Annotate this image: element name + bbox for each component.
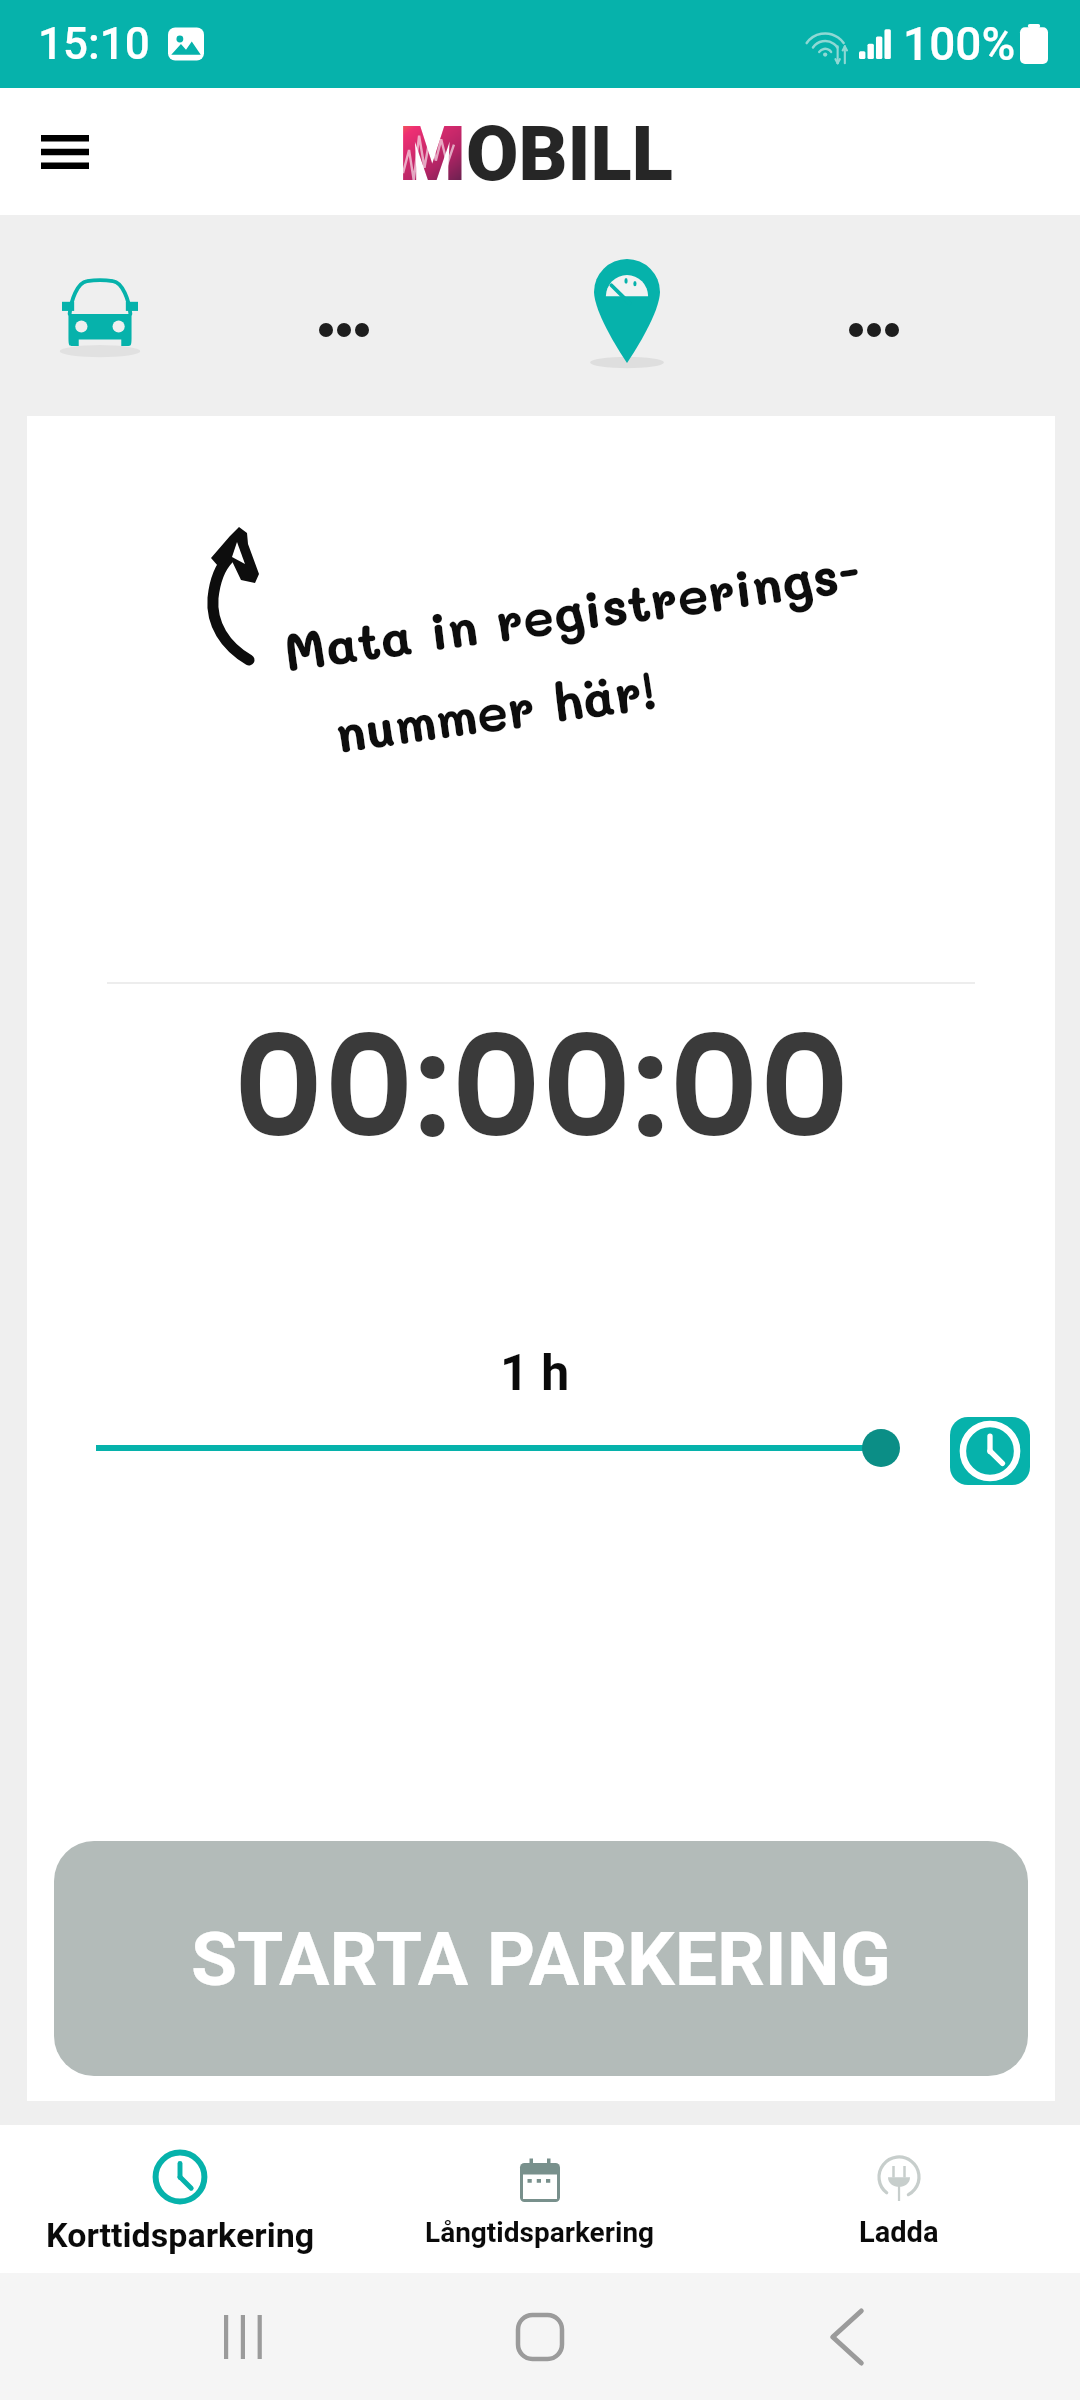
button[interactable]: Back xyxy=(797,2287,897,2387)
button[interactable]: Select vehicle xyxy=(22,253,177,381)
button[interactable]: Home xyxy=(490,2287,590,2387)
button[interactable]: Långtidsparkering xyxy=(360,2125,720,2273)
staticText: 00:00:00 xyxy=(233,989,850,1185)
button[interactable]: Recent apps xyxy=(195,2287,295,2387)
staticText: Långtidsparkering xyxy=(425,2216,655,2249)
button[interactable]: Select parking zone xyxy=(562,235,692,387)
button[interactable]: Open navigation menu xyxy=(12,97,118,207)
staticText: 100% xyxy=(903,17,1016,71)
staticText: 1 h xyxy=(500,1344,570,1403)
button[interactable]: Parking duration slider xyxy=(76,1418,901,1478)
staticText: STARTA PARKERING xyxy=(191,1915,891,2003)
staticText: Ladda xyxy=(859,2215,939,2249)
button[interactable]: STARTA PARKERING xyxy=(54,1841,1028,2076)
staticText: OBILL xyxy=(466,109,673,198)
button[interactable]: Ladda xyxy=(719,2125,1079,2273)
staticText: M xyxy=(399,109,466,198)
staticText: 15:10 xyxy=(38,18,150,70)
staticText: Korttidsparkering xyxy=(46,2215,315,2255)
button[interactable]: Choose end time xyxy=(950,1417,1030,1485)
staticText: nummer här! xyxy=(331,654,660,766)
button[interactable]: Korttidsparkering xyxy=(0,2125,360,2273)
staticText: Mata in registrerings- xyxy=(279,536,865,685)
